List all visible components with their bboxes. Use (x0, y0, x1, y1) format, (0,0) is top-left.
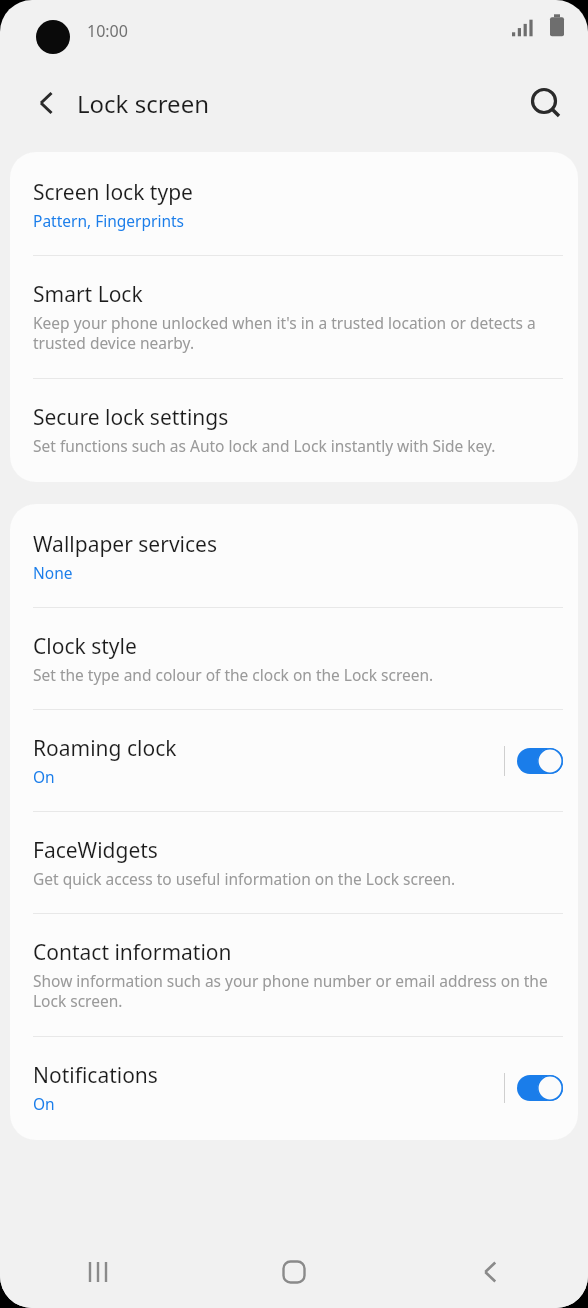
button[interactable]: Screen lock type (10, 152, 578, 255)
button[interactable]: Roaming clock (10, 710, 578, 811)
button[interactable]: Back (392, 1236, 588, 1308)
staticText: Lock screen (77, 87, 210, 120)
button[interactable]: Recent apps (0, 1236, 196, 1308)
staticText: On (33, 766, 55, 787)
staticText: Roaming clock (33, 734, 177, 763)
button[interactable]: Toggle Roaming clock (517, 748, 563, 774)
staticText: Secure lock settings (33, 403, 229, 432)
staticText: None (33, 562, 73, 583)
staticText: 10:00 (87, 20, 128, 42)
button[interactable]: Search (520, 77, 572, 129)
button[interactable]: Wallpaper services (10, 504, 578, 607)
button[interactable]: Contact information (10, 914, 578, 1036)
staticText: Wallpaper services (33, 530, 217, 559)
staticText: Show information such as your phone numb… (33, 970, 563, 1012)
staticText: Get quick access to useful information o… (33, 868, 456, 889)
staticText: Notifications (33, 1061, 158, 1090)
staticText: Set functions such as Auto lock and Lock… (33, 435, 496, 456)
button[interactable]: Back (22, 79, 70, 127)
staticText: Keep your phone unlocked when it's in a … (33, 312, 563, 354)
staticText: Smart Lock (33, 280, 143, 309)
staticText: FaceWidgets (33, 836, 158, 865)
button[interactable]: Notifications (10, 1037, 578, 1140)
staticText: Contact information (33, 938, 232, 967)
staticText: Set the type and colour of the clock on … (33, 664, 434, 685)
button[interactable]: Secure lock settings (10, 379, 578, 482)
button[interactable]: Clock style (10, 608, 578, 709)
staticText: On (33, 1093, 55, 1114)
button[interactable]: Toggle Notifications (517, 1075, 563, 1101)
button[interactable]: FaceWidgets (10, 812, 578, 913)
staticText: Pattern, Fingerprints (33, 210, 185, 231)
button[interactable]: Smart Lock (10, 256, 578, 378)
staticText: Screen lock type (33, 178, 193, 207)
button[interactable]: Home (196, 1236, 392, 1308)
staticText: Clock style (33, 632, 137, 661)
